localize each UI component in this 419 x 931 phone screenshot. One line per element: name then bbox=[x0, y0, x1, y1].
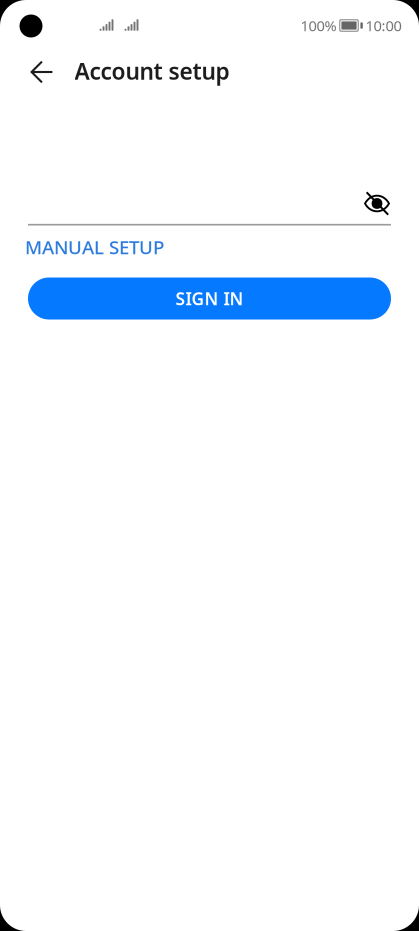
button[interactable]: Back bbox=[18, 48, 66, 96]
button[interactable]: Password bbox=[28, 175, 391, 225]
button[interactable]: Show password bbox=[356, 184, 398, 222]
button[interactable]: SIGN IN bbox=[28, 277, 391, 319]
staticText: Account setup bbox=[74, 56, 229, 86]
staticText: MANUAL SETUP bbox=[25, 235, 164, 259]
staticText: 10:00 bbox=[365, 16, 401, 35]
staticText: SIGN IN bbox=[175, 287, 243, 310]
button[interactable]: MANUAL SETUP bbox=[25, 235, 164, 259]
staticText: 100% bbox=[300, 16, 336, 35]
